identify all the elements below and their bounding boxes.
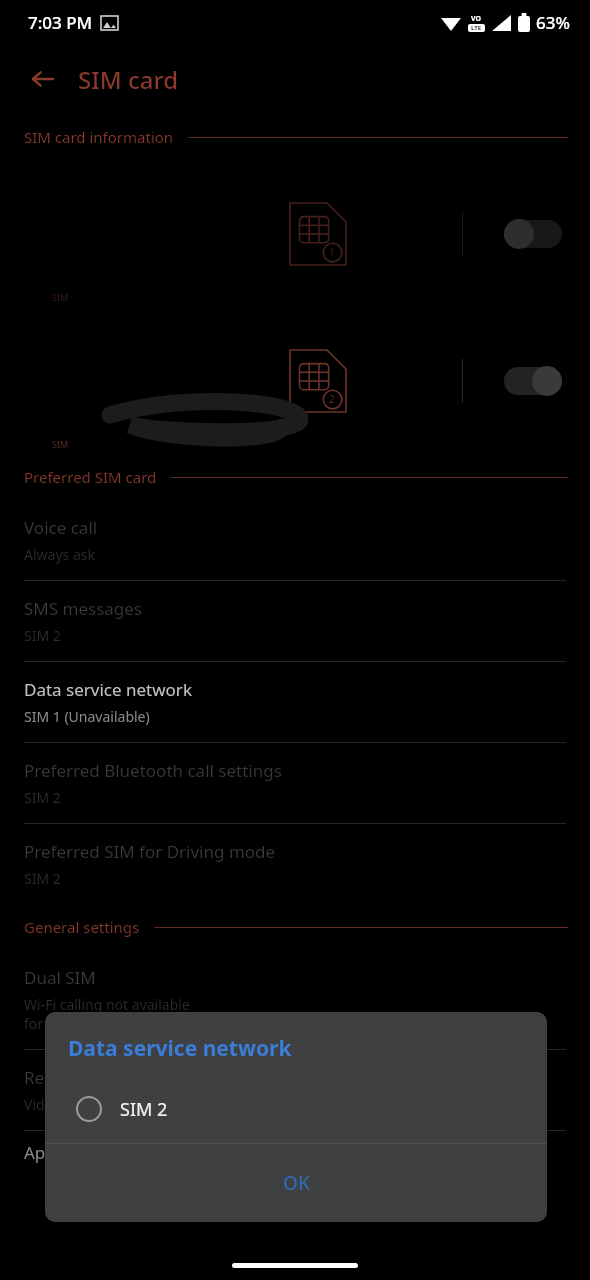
- staticText: Wi-Fi calling not available for this SIM: [24, 995, 190, 1033]
- staticText: LTE: [471, 24, 482, 32]
- button[interactable]: OK: [45, 1144, 547, 1222]
- button[interactable]: SIM: [0, 160, 590, 307]
- button[interactable]: Back: [26, 62, 60, 96]
- staticText: SIM 2: [24, 626, 61, 645]
- staticText: SIM card information: [24, 127, 174, 147]
- button[interactable]: SMS messages: [0, 581, 590, 662]
- button[interactable]: Data service network: [0, 662, 590, 743]
- staticText: 1: [329, 245, 335, 259]
- staticText: Video calling: [24, 1095, 108, 1114]
- staticText: SMS messages: [24, 597, 142, 620]
- staticText: 2: [329, 392, 335, 406]
- staticText: SIM card: [78, 63, 179, 96]
- staticText: Preferred Bluetooth call settings: [24, 759, 282, 782]
- button[interactable]: Preferred SIM for Driving mode: [0, 824, 590, 904]
- staticText: SIM: [52, 291, 69, 303]
- button[interactable]: SIM 2: [45, 1085, 547, 1133]
- staticText: SIM 2: [24, 869, 61, 888]
- staticText: Data service network: [24, 678, 192, 701]
- button[interactable]: Preferred Bluetooth call settings: [0, 743, 590, 824]
- staticText: Apply 4G on non-preferred data SIM: [24, 1141, 313, 1164]
- staticText: SIM: [52, 438, 69, 450]
- staticText: Preferred SIM card: [24, 467, 157, 487]
- button[interactable]: Voice call: [0, 500, 590, 581]
- staticText: 7:03 PM: [28, 11, 93, 34]
- staticText: SIM 2: [24, 788, 61, 807]
- staticText: Dual SIM: [24, 966, 96, 989]
- staticText: Voice call: [24, 516, 98, 539]
- staticText: SIM 1 (Unavailable): [24, 707, 150, 726]
- button[interactable]: Reset settings: [0, 1050, 590, 1131]
- staticText: Always ask: [24, 545, 95, 564]
- staticText: General settings: [24, 917, 140, 937]
- staticText: Data service network: [68, 1034, 292, 1063]
- staticText: Preferred SIM for Driving mode: [24, 840, 276, 863]
- staticText: VO: [471, 14, 482, 24]
- button[interactable]: Dual SIM: [0, 950, 590, 1050]
- button[interactable]: Apply 4G on non-preferred data SIM: [0, 1131, 590, 1164]
- staticText: Reset settings: [24, 1066, 136, 1089]
- button[interactable]: Enable SIM 1: [504, 219, 562, 249]
- staticText: OK: [283, 1170, 310, 1196]
- staticText: SIM 2: [120, 1097, 168, 1122]
- staticText: 63%: [536, 11, 570, 34]
- button[interactable]: SIM: [0, 307, 590, 454]
- button[interactable]: Back: [0, 44, 590, 114]
- button[interactable]: Disable SIM 2: [504, 366, 562, 396]
